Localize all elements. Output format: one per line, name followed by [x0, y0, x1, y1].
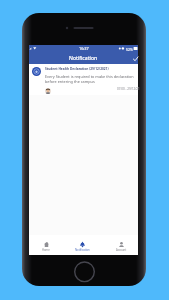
staticText: Account [116, 248, 127, 252]
staticText: Home [42, 248, 50, 252]
staticText: 52% [126, 47, 133, 52]
button[interactable]: Mark all as read [131, 54, 140, 63]
staticText: 07:00 - 29/12/21 [117, 87, 140, 91]
staticText: Notification [75, 248, 90, 252]
staticText: Student Health Declaration (29/12/2021) [45, 67, 109, 71]
staticText: 16:37 [79, 46, 89, 51]
button[interactable]: Notification [65, 235, 99, 255]
button[interactable]: Student Health Declaration (29/12/2021) [29, 64, 138, 95]
button[interactable]: Home [29, 235, 63, 255]
staticText: Every Student is required to make this d… [45, 74, 134, 84]
staticText: Notification [69, 55, 98, 62]
button[interactable]: Account [104, 235, 138, 255]
